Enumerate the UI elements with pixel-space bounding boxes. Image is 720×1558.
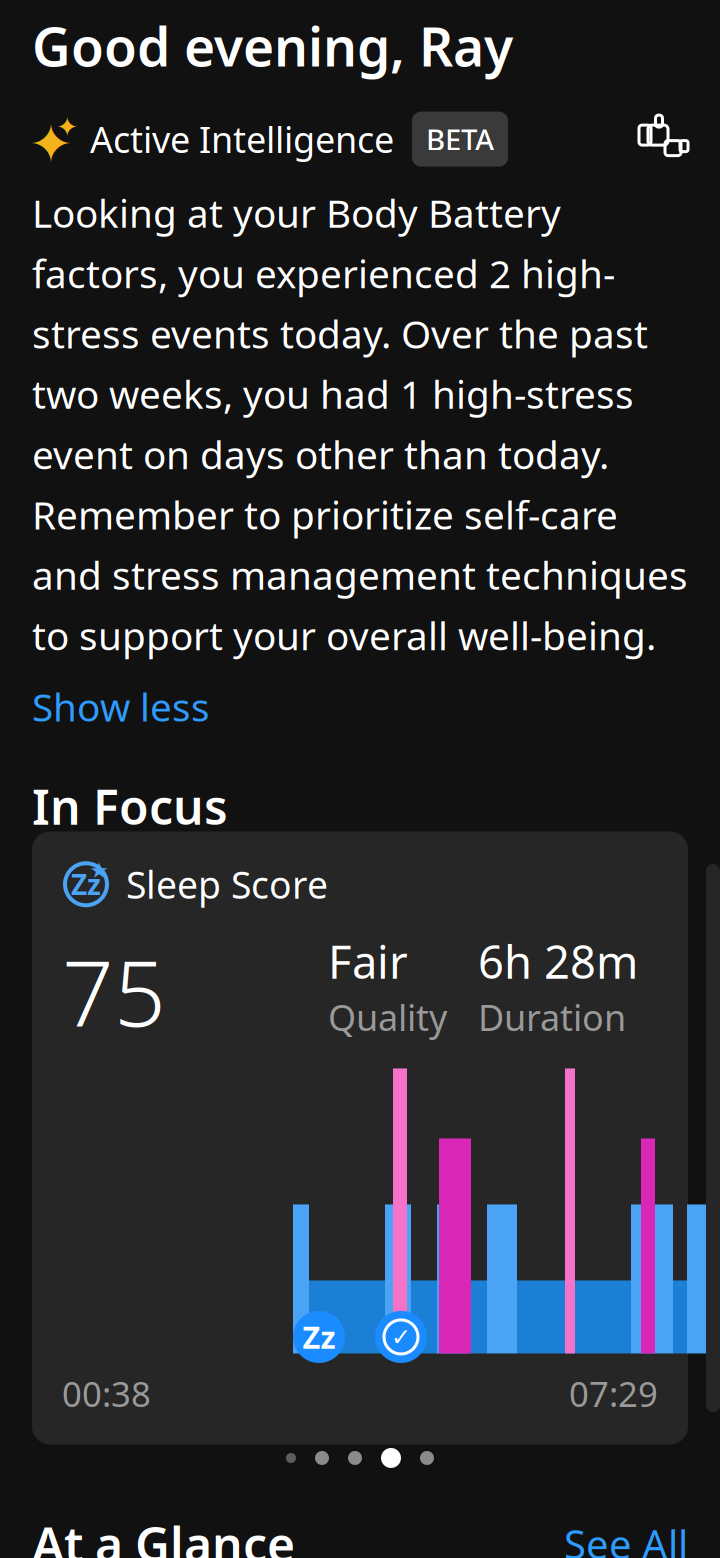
button[interactable]: Rate this insight [636,113,688,165]
staticText: BETA [426,120,494,159]
staticText: Looking at your Body Battery factors, yo… [32,187,688,661]
staticText: 75 [62,931,166,1051]
staticText: Active Intelligence [90,115,394,163]
staticText: Duration [478,993,626,1041]
button[interactable]: Show less [32,681,210,732]
staticText: ✦ [56,112,78,142]
staticText: ✦ [28,114,73,174]
staticText: Show less [32,681,210,732]
staticText: ★ [89,858,108,882]
staticText: Sleep Score [126,859,328,909]
staticText: Quality [328,993,447,1041]
staticText: Zz [302,1317,335,1357]
staticText: 6h 28m [478,931,638,991]
staticText: Fair [328,931,408,991]
staticText: Good evening, Ray [32,10,513,81]
staticText: ✓ [391,1323,411,1350]
staticText: In Focus [32,774,228,838]
staticText: 00:38 [62,1370,151,1416]
staticText: Zz [71,866,101,903]
staticText: 07:29 [569,1370,658,1416]
button[interactable]: Sleep Score 75, Fair quality, 6 hours 28… [32,831,688,1444]
button[interactable]: See All [564,1517,688,1558]
staticText: See All [564,1517,688,1558]
staticText: At a Glance [32,1512,295,1558]
